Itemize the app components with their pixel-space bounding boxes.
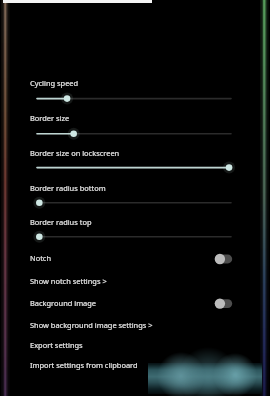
staticText: Import settings from clipboard	[30, 360, 138, 370]
staticText: Background image	[30, 298, 97, 308]
button[interactable]	[0, 249, 270, 269]
staticText: Export settings	[30, 340, 83, 350]
button[interactable]	[0, 316, 270, 336]
staticText: Notch	[30, 253, 52, 263]
staticText: Cycling speed	[30, 78, 79, 88]
button[interactable]: Border radius top	[0, 214, 270, 244]
button[interactable]	[0, 294, 270, 314]
staticText: Show background image settings >	[30, 320, 153, 330]
button[interactable]: Cycling speed	[0, 75, 270, 105]
button[interactable]	[0, 336, 270, 356]
button[interactable]	[0, 272, 270, 292]
button[interactable]: Border size	[0, 110, 270, 140]
button[interactable]	[0, 356, 270, 376]
button[interactable]: Border size on lockscreen	[0, 145, 270, 175]
staticText: Border size on lockscreen	[30, 148, 120, 158]
staticText: Border size	[30, 113, 70, 123]
staticText: Border radius bottom	[30, 183, 106, 193]
staticText: Border radius top	[30, 217, 92, 227]
staticText: Show notch settings >	[30, 276, 107, 286]
button[interactable]: Border radius bottom	[0, 180, 270, 210]
